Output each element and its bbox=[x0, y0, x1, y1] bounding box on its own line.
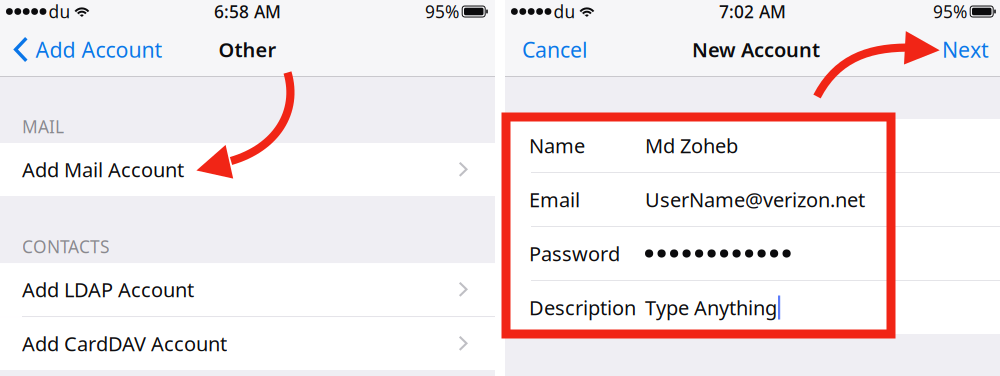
staticText: 95% bbox=[425, 0, 459, 23]
button[interactable]: Add Mail Account bbox=[0, 143, 495, 196]
button[interactable]: Add CardDAV Account bbox=[0, 317, 495, 370]
staticText: New Account bbox=[692, 36, 820, 63]
button[interactable]: Cancel bbox=[505, 29, 600, 70]
staticText: UserName@verizon.net bbox=[645, 186, 865, 213]
staticText: 95% bbox=[933, 0, 967, 23]
button[interactable]: Next bbox=[930, 29, 1000, 70]
staticText: 6:58 AM bbox=[214, 0, 281, 23]
staticText: Add CardDAV Account bbox=[22, 330, 227, 357]
staticText: Name bbox=[529, 132, 585, 159]
staticText: CONTACTS bbox=[22, 235, 110, 258]
button[interactable]: Add LDAP Account bbox=[0, 263, 495, 316]
staticText: 7:02 AM bbox=[719, 0, 786, 23]
staticText: Type Anything bbox=[645, 294, 777, 321]
staticText: Add Account bbox=[35, 35, 162, 64]
staticText: Next bbox=[942, 35, 989, 64]
staticText: Email bbox=[529, 186, 580, 213]
staticText: Other bbox=[218, 36, 276, 63]
staticText: Md Zoheb bbox=[645, 132, 738, 159]
staticText: Description bbox=[529, 294, 636, 321]
staticText: Cancel bbox=[522, 35, 588, 64]
staticText: du bbox=[553, 0, 575, 23]
staticText: Password bbox=[529, 240, 620, 267]
staticText: du bbox=[48, 0, 70, 23]
staticText: Add Mail Account bbox=[22, 156, 184, 183]
staticText: Add LDAP Account bbox=[22, 276, 194, 303]
staticText: MAIL bbox=[22, 115, 64, 138]
button[interactable]: Add Account bbox=[0, 29, 162, 70]
